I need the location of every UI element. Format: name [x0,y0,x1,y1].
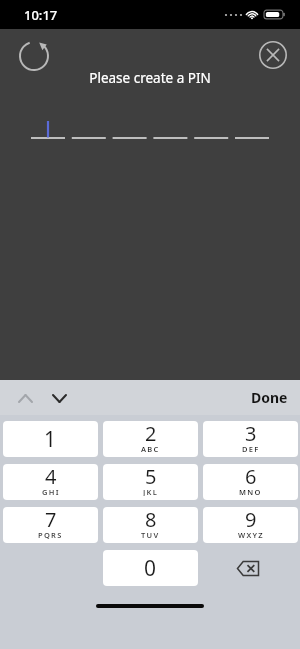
staticText: PQRS [38,530,63,539]
staticText: 4 [45,464,57,490]
staticText: WXYZ [238,530,264,539]
staticText: 9 [245,507,257,533]
button[interactable]: 2 [103,421,198,457]
staticText: 8 [145,507,157,533]
button[interactable]: Previous field [12,385,38,411]
button[interactable]: Done [243,384,296,411]
button[interactable]: Next field [46,385,72,411]
staticText: 7 [45,507,57,533]
staticText: Please create a PIN [0,69,300,87]
button[interactable]: 5 [103,464,198,500]
button[interactable]: 8 [103,507,198,543]
button[interactable]: 1 [3,421,98,457]
staticText: DEF [242,444,260,453]
staticText: 2 [145,421,157,447]
staticText: 6 [245,464,257,490]
button[interactable]: 4 [3,464,98,500]
staticText: TUV [141,530,160,539]
staticText: 1 [44,425,57,454]
staticText: GHI [42,487,60,496]
button[interactable]: Close [256,38,290,72]
button[interactable]: 0 [103,550,198,586]
staticText: JKL [143,487,159,496]
staticText: 3 [245,421,257,447]
button[interactable]: Refresh [16,38,52,74]
staticText: 0 [144,554,157,583]
button[interactable]: 3 [203,421,298,457]
button[interactable]: 7 [3,507,98,543]
staticText: ABC [141,444,160,453]
staticText: MNO [239,487,262,496]
staticText: Done [251,388,288,407]
button[interactable]: 9 [203,507,298,543]
staticText: 10:17 [24,6,58,24]
staticText: 5 [145,464,157,490]
button[interactable]: 6 [203,464,298,500]
button[interactable]: Delete [198,550,298,586]
